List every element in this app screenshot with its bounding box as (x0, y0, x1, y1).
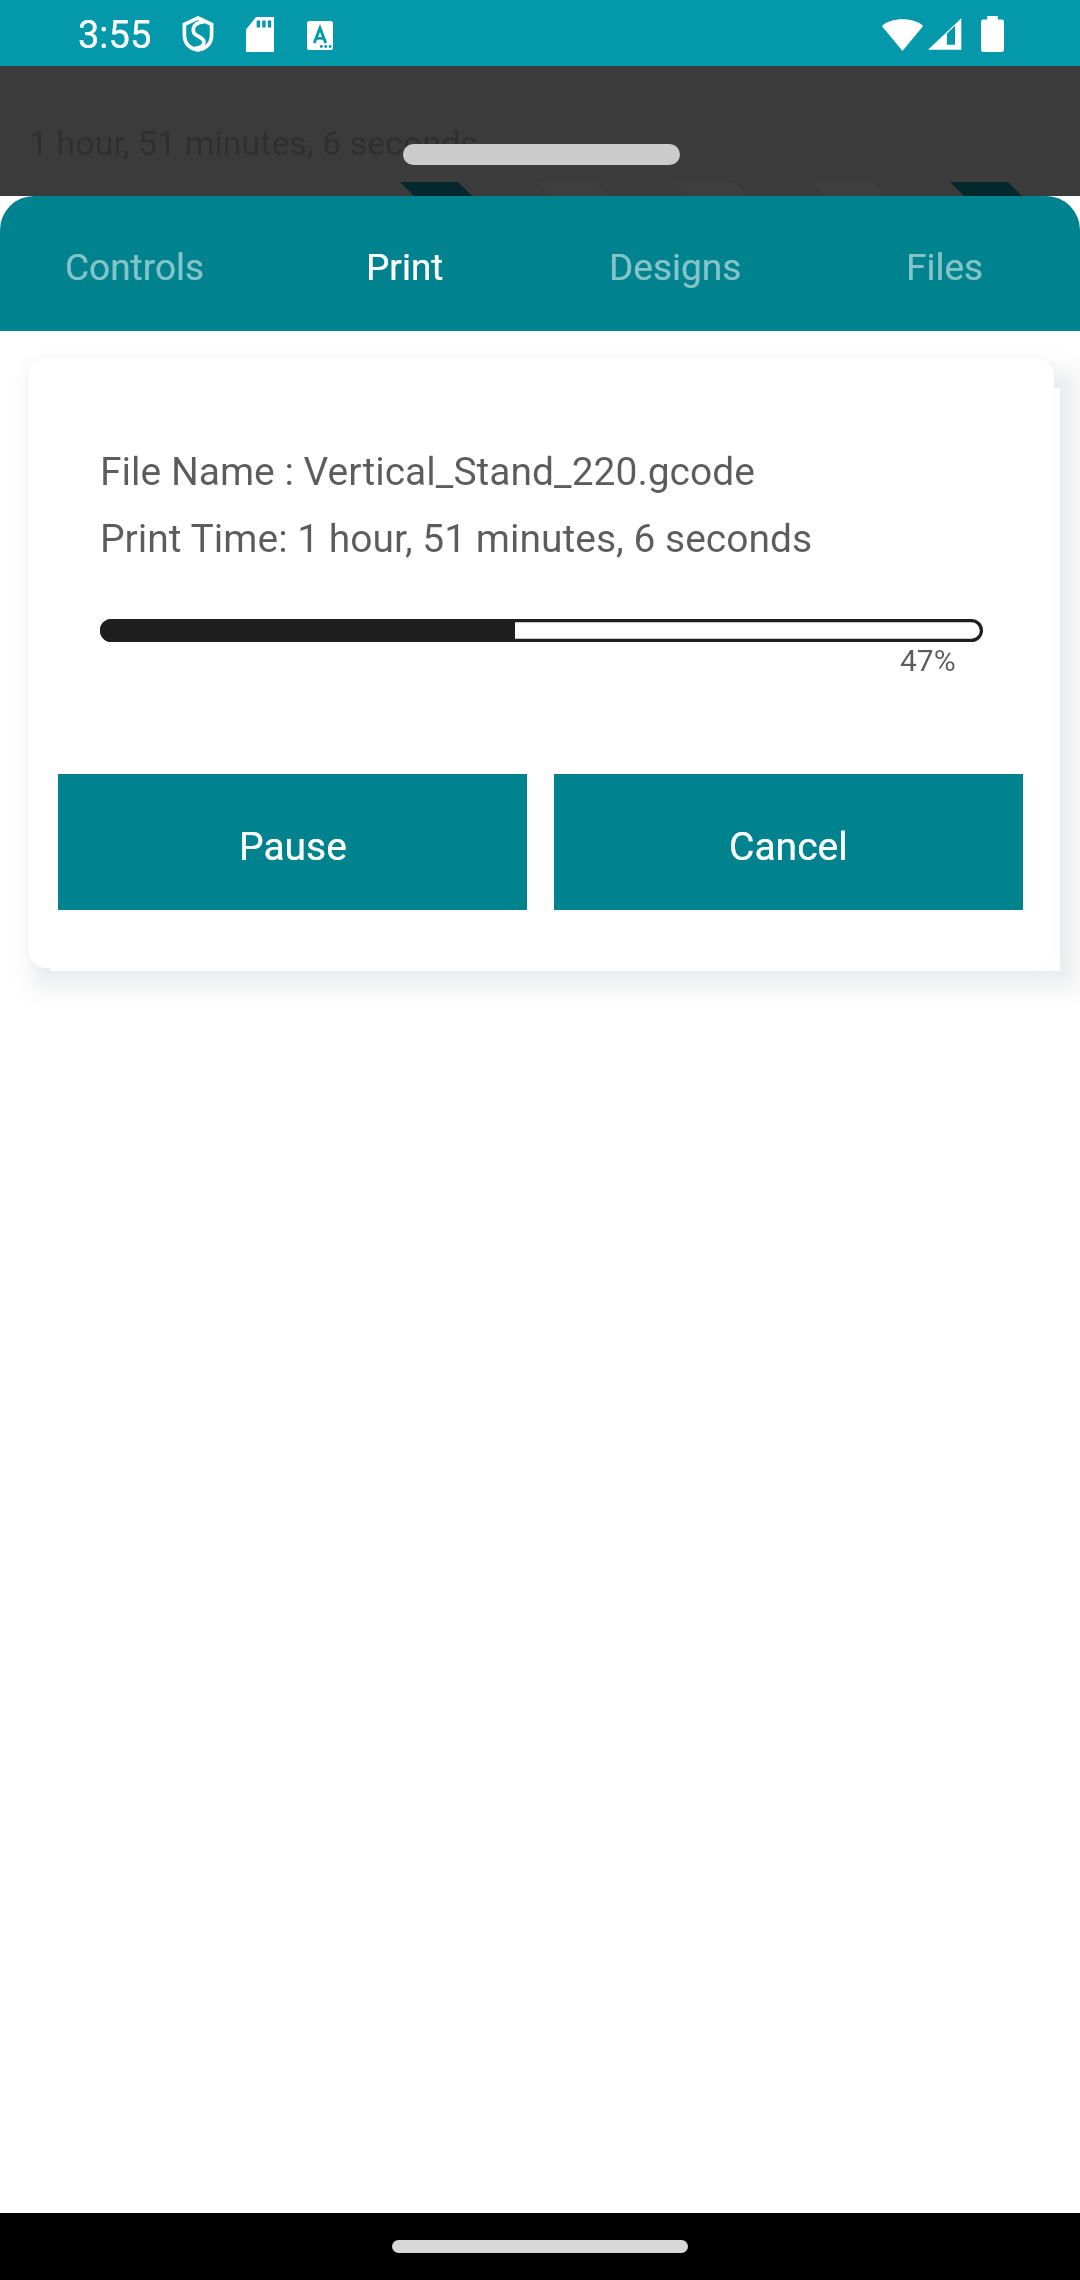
staticText: Print Time: 1 hour, 51 minutes, 6 second… (100, 516, 813, 562)
other: Wi-Fi connected (881, 16, 924, 52)
button[interactable]: Cancel (554, 774, 1023, 910)
staticText: 3:55 (78, 13, 152, 58)
button[interactable]: Designs (540, 196, 810, 331)
staticText: 47% (900, 643, 956, 678)
staticText: Files (906, 246, 984, 289)
staticText: Cancel (729, 824, 848, 870)
staticText: Controls (65, 246, 205, 289)
staticText: 1 hour, 51 minutes, 6 seconds (29, 123, 478, 163)
other: VPN active (182, 16, 214, 52)
button[interactable]: Print (270, 196, 540, 331)
staticText: Designs (609, 246, 742, 289)
other: Mobile signal (927, 16, 962, 52)
other: Battery full (981, 16, 1004, 52)
other: Input method (307, 21, 333, 50)
button[interactable]: Files (810, 196, 1080, 331)
staticText: Print (366, 246, 444, 289)
button[interactable]: Pause (58, 774, 527, 910)
other: SD card (246, 17, 274, 52)
other: Home gesture handle (392, 2240, 688, 2253)
staticText: File Name : Vertical_Stand_220.gcode (100, 449, 755, 495)
staticText: Pause (239, 824, 347, 870)
button[interactable]: Controls (0, 196, 270, 331)
